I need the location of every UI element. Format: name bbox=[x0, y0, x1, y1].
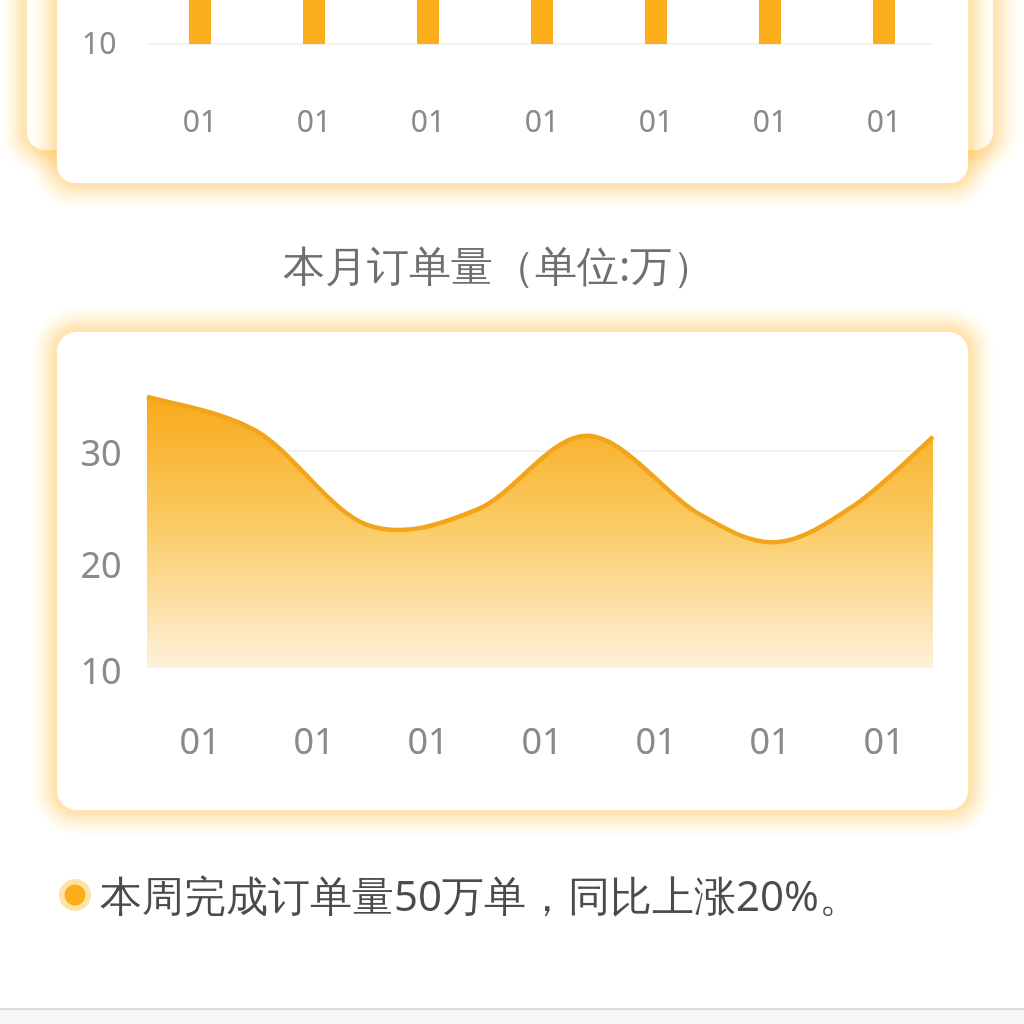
staticText: 01 bbox=[854, 716, 914, 765]
staticText: 01 bbox=[512, 100, 572, 141]
button[interactable]: 本周完成订单量50万单，同比上涨20%。 bbox=[100, 866, 861, 923]
staticText: 01 bbox=[512, 716, 572, 765]
staticText: 01 bbox=[284, 716, 344, 765]
staticText: 30 bbox=[80, 428, 122, 477]
staticText: 01 bbox=[626, 716, 686, 765]
staticText: 01 bbox=[626, 100, 686, 141]
staticText: 本月订单量（单位:万） bbox=[283, 236, 715, 293]
staticText: 01 bbox=[398, 716, 458, 765]
staticText: 01 bbox=[740, 716, 800, 765]
staticText: 01 bbox=[170, 100, 230, 141]
staticText: 01 bbox=[740, 100, 800, 141]
staticText: 01 bbox=[854, 100, 914, 141]
staticText: 20 bbox=[80, 540, 122, 589]
staticText: 10 bbox=[82, 22, 117, 63]
staticText: 01 bbox=[170, 716, 230, 765]
staticText: 10 bbox=[80, 646, 122, 695]
staticText: 01 bbox=[398, 100, 458, 141]
staticText: 01 bbox=[284, 100, 344, 141]
